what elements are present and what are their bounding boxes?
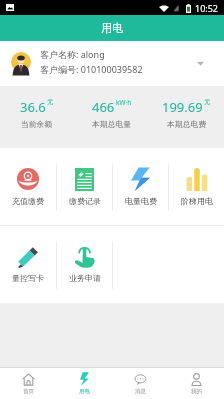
staticText: 客户名称: along xyxy=(40,48,105,60)
button[interactable]: 业务申请 xyxy=(57,226,112,303)
staticText: 10:52 xyxy=(195,2,219,14)
staticText: 业务申请 xyxy=(69,273,101,283)
staticText: 量控写卡 xyxy=(12,273,44,283)
staticText: 客户编号: 010100039582 xyxy=(40,63,143,75)
staticText: 用电 xyxy=(79,388,90,395)
staticText: kW·h xyxy=(116,98,132,107)
staticText: 我的 xyxy=(191,388,202,395)
staticText: 首页 xyxy=(23,388,34,395)
button[interactable]: 量控写卡 xyxy=(0,226,56,303)
staticText: 466 xyxy=(92,98,115,116)
staticText: 当前余额 xyxy=(21,119,53,129)
other: Select account xyxy=(197,61,204,66)
staticText: 用电 xyxy=(101,21,123,35)
staticText: 阶梯用电 xyxy=(181,196,213,206)
button[interactable]: 首页 xyxy=(0,368,56,399)
button[interactable]: 消息 xyxy=(112,368,168,399)
staticText: 本期总电费 xyxy=(167,119,206,129)
button[interactable]: 缴费记录 xyxy=(57,148,112,225)
staticText: 本期总电量 xyxy=(92,119,131,129)
button[interactable]: 阶梯用电 xyxy=(169,148,224,225)
staticText: 元 xyxy=(47,98,54,106)
button[interactable]: 用电 xyxy=(56,368,112,399)
button[interactable]: 电量电费 xyxy=(113,148,168,225)
staticText: 36.6 xyxy=(20,98,46,116)
button[interactable]: 充值缴费 xyxy=(0,148,56,225)
staticText: 充值缴费 xyxy=(12,196,44,206)
button[interactable]: 客户名称: along xyxy=(0,41,224,86)
staticText: 缴费记录 xyxy=(69,196,101,206)
staticText: 199.69 xyxy=(162,98,203,116)
staticText: 消息 xyxy=(135,388,146,395)
button[interactable]: 我的 xyxy=(168,368,224,399)
staticText: 电量电费 xyxy=(125,196,157,206)
staticText: 元 xyxy=(204,98,211,106)
